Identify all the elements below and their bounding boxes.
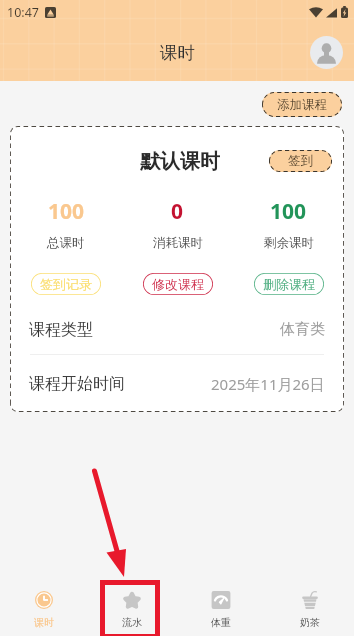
button[interactable]: 体重: [176, 580, 265, 636]
button[interactable]: 签到记录: [31, 273, 101, 295]
staticText: 100: [270, 197, 307, 226]
staticText: 2025年11月26日: [211, 374, 325, 394]
button[interactable]: 流水: [88, 580, 176, 636]
button[interactable]: 添加课程: [262, 92, 342, 117]
staticText: 10:47: [7, 4, 39, 21]
button[interactable]: 课时: [0, 580, 88, 636]
staticText: 修改课程: [152, 276, 204, 292]
button[interactable]: Profile: [310, 36, 343, 69]
staticText: 签到: [288, 153, 313, 169]
staticText: 奶茶: [300, 616, 320, 629]
button[interactable]: 签到: [269, 150, 332, 172]
staticText: 课时: [34, 616, 54, 629]
staticText: 0: [171, 197, 184, 226]
staticText: 课程开始时间: [29, 374, 125, 394]
staticText: 体重: [211, 616, 231, 629]
staticText: 体育类: [280, 320, 325, 339]
button[interactable]: 课程开始时间: [29, 355, 325, 412]
staticText: 100: [48, 197, 85, 226]
staticText: 签到记录: [40, 276, 92, 292]
button[interactable]: 奶茶: [265, 580, 354, 636]
staticText: 删除课程: [263, 276, 315, 292]
staticText: 流水: [122, 616, 142, 629]
staticText: 消耗课时: [153, 235, 203, 251]
staticText: 课时: [160, 42, 195, 64]
staticText: 课程类型: [29, 320, 93, 340]
staticText: 剩余课时: [264, 235, 314, 251]
button[interactable]: 修改课程: [143, 273, 213, 295]
button[interactable]: 课程类型: [29, 305, 325, 354]
button[interactable]: 删除课程: [254, 273, 324, 295]
staticText: 添加课程: [277, 97, 327, 113]
staticText: 总课时: [47, 235, 85, 251]
staticText: 默认课时: [140, 149, 220, 172]
